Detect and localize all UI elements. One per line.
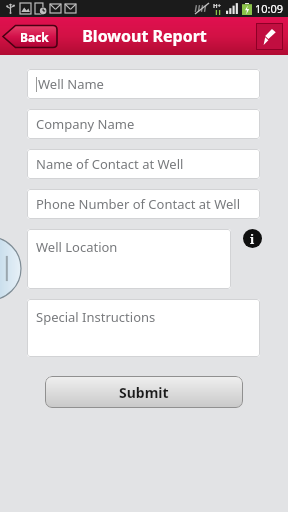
staticText: Well Location [36, 238, 118, 256]
staticText: H+ [213, 2, 222, 10]
staticText: Back [20, 29, 49, 45]
staticText: i [250, 231, 255, 247]
button[interactable]: Special Instructions [27, 299, 260, 357]
staticText: 10:09 [255, 1, 284, 16]
staticText: Name of Contact at Well [36, 155, 184, 173]
button[interactable]: Open drawer [0, 237, 20, 300]
button[interactable]: Well Location [27, 229, 231, 289]
staticText: Submit [119, 383, 169, 402]
staticText: Phone Number of Contact at Well [36, 195, 241, 213]
staticText: Blowout Report [82, 25, 207, 47]
button[interactable]: Back [3, 24, 57, 49]
button[interactable]: Company Name [27, 109, 260, 139]
button[interactable]: Phone Number of Contact at Well [27, 189, 260, 219]
button[interactable]: Well Name [27, 69, 260, 99]
staticText: Well Name [38, 75, 104, 93]
button[interactable]: Info [243, 229, 262, 248]
button[interactable]: Submit [45, 376, 243, 408]
staticText: Special Instructions [36, 308, 156, 326]
button[interactable]: Name of Contact at Well [27, 149, 260, 179]
staticText: Company Name [36, 115, 135, 133]
button[interactable]: Report tool [256, 23, 283, 50]
